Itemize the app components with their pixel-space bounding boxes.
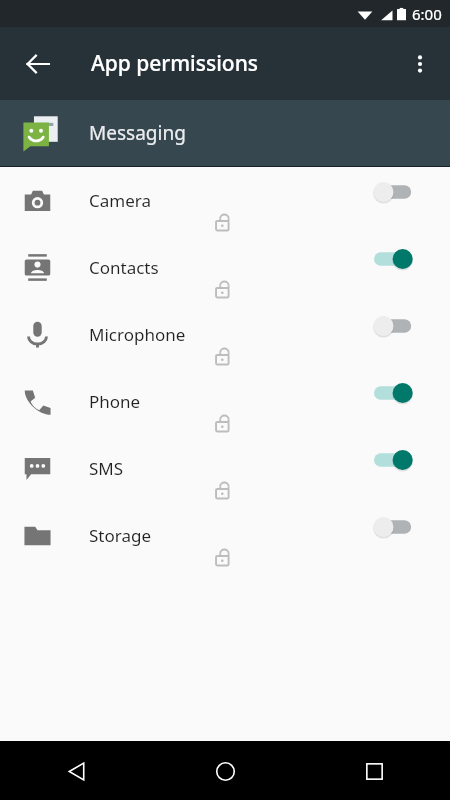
button[interactable]: Microphone [0,301,450,368]
staticText: Messaging [89,120,186,146]
button[interactable]: Home [201,747,249,795]
button[interactable]: Storage [0,502,450,569]
button[interactable]: Back [52,747,100,795]
button[interactable]: Contacts [0,234,450,301]
staticText: 6:00 [412,4,442,24]
staticText: Storage [89,524,152,547]
button[interactable]: Camera permission toggle [374,175,434,209]
button[interactable]: Phone [0,368,450,435]
staticText: Contacts [89,256,159,279]
button[interactable]: Messaging [0,100,450,166]
button[interactable]: Storage permission toggle [374,510,434,544]
button[interactable]: SMS permission toggle [374,443,434,477]
button[interactable]: Back [14,40,62,88]
staticText: Phone [89,390,141,413]
staticText: SMS [89,457,124,480]
button[interactable]: Phone permission toggle [374,376,434,410]
staticText: App permissions [91,49,259,78]
button[interactable]: Contacts permission toggle [374,242,434,276]
button[interactable]: More options [396,40,444,88]
button[interactable]: Scroll up [396,733,440,777]
button[interactable]: Camera [0,167,450,234]
staticText: Microphone [89,323,186,346]
button[interactable]: SMS [0,435,450,502]
button[interactable]: Recent apps [350,747,398,795]
staticText: Camera [89,189,151,212]
button[interactable]: Microphone permission toggle [374,309,434,343]
